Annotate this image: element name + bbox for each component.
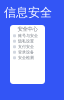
- staticText: 账号与安全: [18, 33, 38, 38]
- button[interactable]: 安全检测: [10, 55, 45, 60]
- button[interactable]: 支付安全: [10, 44, 45, 49]
- staticText: 登录设备: [18, 50, 34, 55]
- staticText: 安全中心: [17, 26, 37, 32]
- button[interactable]: 登录设备: [10, 49, 45, 55]
- button[interactable]: 隐私设置: [10, 38, 45, 44]
- staticText: 信息安全: [4, 5, 52, 20]
- staticText: 隐私设置: [18, 39, 34, 44]
- staticText: 支付安全: [18, 44, 34, 49]
- staticText: 安全检测: [18, 55, 34, 60]
- button[interactable]: 账号与安全: [10, 33, 45, 38]
